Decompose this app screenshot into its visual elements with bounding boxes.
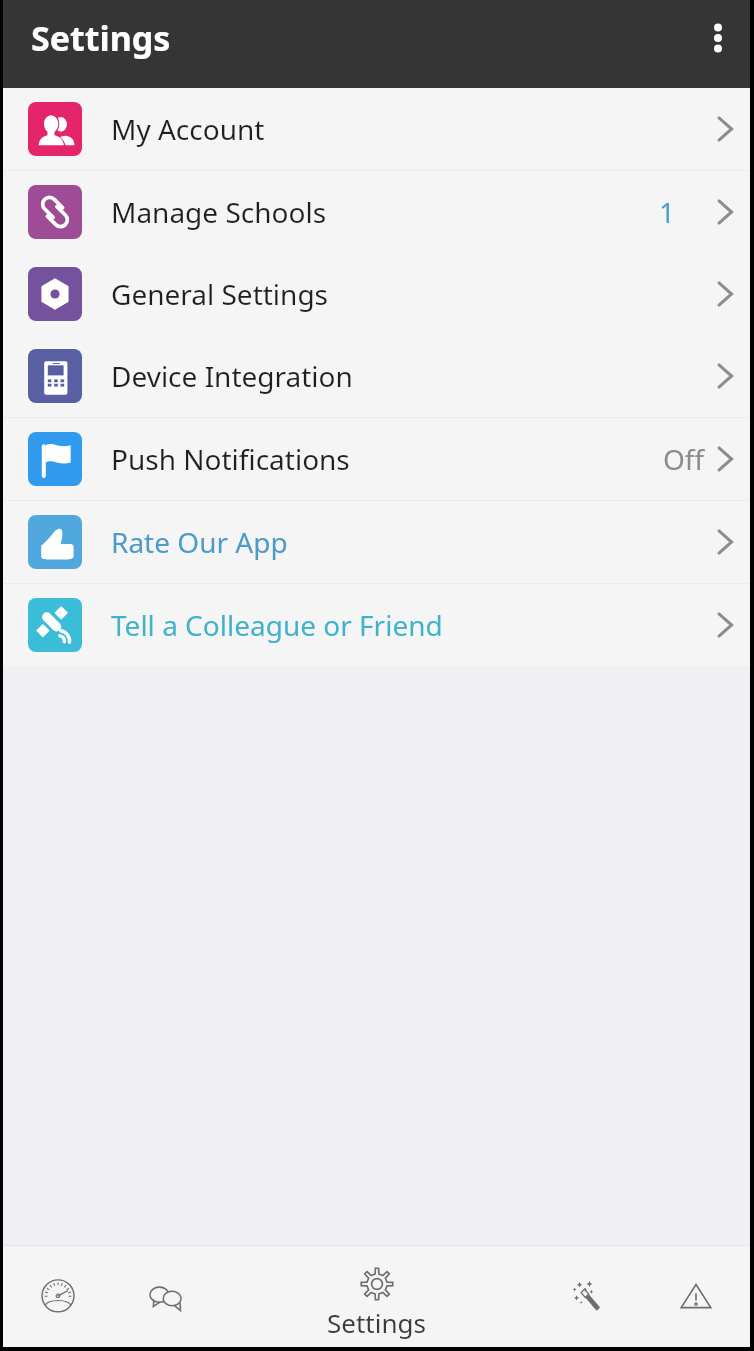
button[interactable]: Dashboard: [3, 1246, 112, 1347]
button[interactable]: My Account: [3, 88, 750, 170]
button[interactable]: Push Notifications: [3, 418, 750, 500]
staticText: 1: [659, 193, 676, 231]
staticText: Settings: [327, 1305, 426, 1340]
staticText: Tell a Colleague or Friend: [111, 606, 443, 644]
staticText: General Settings: [111, 275, 329, 313]
button[interactable]: Manage Schools: [3, 171, 750, 253]
staticText: My Account: [111, 110, 265, 148]
button[interactable]: Settings: [221, 1246, 532, 1347]
button[interactable]: Tools: [532, 1246, 641, 1347]
button[interactable]: General Settings: [3, 253, 750, 335]
button[interactable]: Tell a Colleague or Friend: [3, 584, 750, 666]
button[interactable]: Device Integration: [3, 335, 750, 417]
staticText: Rate Our App: [111, 523, 288, 561]
staticText: Device Integration: [111, 357, 353, 395]
staticText: Manage Schools: [111, 193, 327, 231]
staticText: Settings: [31, 15, 171, 61]
button[interactable]: Messages: [112, 1246, 221, 1347]
staticText: Off: [663, 440, 705, 478]
staticText: Push Notifications: [111, 440, 350, 478]
button[interactable]: More options: [689, 9, 747, 67]
button[interactable]: Alerts: [641, 1246, 750, 1347]
button[interactable]: Rate Our App: [3, 501, 750, 583]
